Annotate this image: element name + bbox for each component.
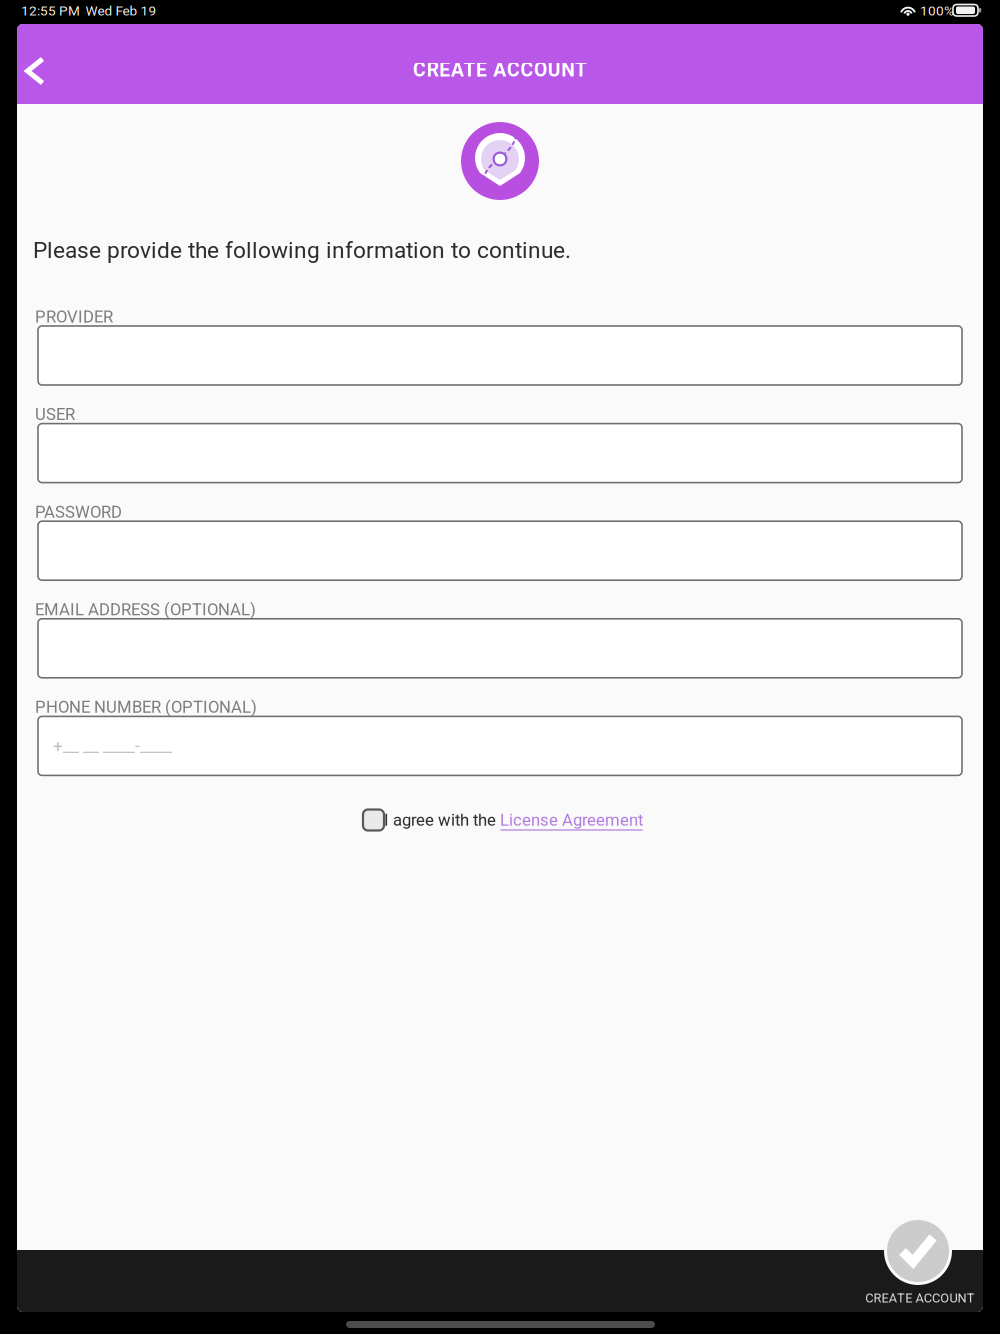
button[interactable]: Create account xyxy=(883,1216,953,1286)
button[interactable]: CREATE ACCOUNT xyxy=(850,1285,990,1311)
staticText: PASSWORD xyxy=(35,502,122,522)
staticText: USER xyxy=(35,405,75,424)
staticText: +__ __ ____-____ xyxy=(53,736,172,756)
button[interactable]: Password xyxy=(38,521,962,580)
staticText: EMAIL ADDRESS (OPTIONAL) xyxy=(35,600,256,619)
staticText: 12:55 PM xyxy=(21,3,80,19)
staticText: Please provide the following information… xyxy=(33,237,571,264)
button[interactable]: Email address (optional) xyxy=(38,619,962,678)
button[interactable]: Phone number (optional) xyxy=(38,716,962,775)
staticText: Wed Feb 19 xyxy=(85,3,156,19)
staticText: I agree with the xyxy=(384,810,500,830)
button[interactable]: Back xyxy=(17,24,53,104)
staticText: CREATE ACCOUNT xyxy=(865,1290,975,1305)
button[interactable]: Provider xyxy=(38,326,962,385)
staticText: PHONE NUMBER (OPTIONAL) xyxy=(35,697,257,717)
button[interactable]: User xyxy=(38,424,962,483)
staticText: PROVIDER xyxy=(35,307,113,326)
button[interactable]: I agree with the xyxy=(20,803,986,837)
staticText: 100% xyxy=(920,3,954,19)
staticText: CREATE ACCOUNT xyxy=(413,59,587,81)
staticText: License Agreement xyxy=(500,810,643,830)
